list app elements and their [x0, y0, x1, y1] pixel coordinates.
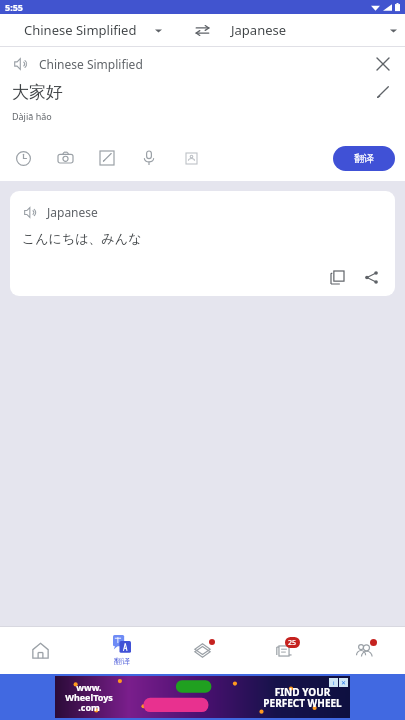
- button[interactable]: Home: [0, 627, 81, 674]
- staticText: i: [333, 679, 335, 687]
- button[interactable]: 翻译: [81, 627, 162, 674]
- staticText: 翻译: [114, 656, 130, 666]
- staticText: Chinese Simplified: [39, 56, 143, 72]
- button[interactable]: Handwriting: [94, 145, 120, 171]
- button[interactable]: Copy: [325, 265, 349, 289]
- button[interactable]: Camera: [52, 145, 78, 171]
- button[interactable]: Share: [359, 265, 383, 289]
- button[interactable]: Feed, 25 new: [243, 627, 324, 674]
- staticText: 25: [288, 638, 297, 648]
- button[interactable]: History: [10, 145, 36, 171]
- button[interactable]: Japanese: [219, 14, 405, 46]
- button[interactable]: Listen translation: [10, 191, 395, 296]
- staticText: ✕: [341, 679, 347, 686]
- staticText: Dàjiā hǎo: [12, 110, 52, 122]
- staticText: 大家好: [12, 82, 63, 103]
- button[interactable]: Community: [324, 627, 405, 674]
- staticText: 5:55: [5, 1, 23, 13]
- button[interactable]: Collections: [162, 627, 243, 674]
- staticText: Japanese: [231, 21, 287, 39]
- button[interactable]: Swap languages: [185, 14, 219, 46]
- staticText: Chinese Simplified: [24, 21, 137, 39]
- button[interactable]: Chinese Simplified: [0, 14, 185, 46]
- button[interactable]: Edit: [371, 80, 395, 104]
- staticText: FIND YOUR PERFECT WHEEL: [263, 685, 342, 710]
- staticText: 翻译: [354, 152, 374, 165]
- button[interactable]: 翻译: [333, 146, 395, 171]
- staticText: www. WheelToys .com: [65, 681, 113, 713]
- button[interactable]: Listen translation: [21, 203, 39, 221]
- staticText: Japanese: [47, 204, 98, 220]
- button[interactable]: Clear: [372, 53, 394, 75]
- button[interactable]: Conversation: [178, 145, 204, 171]
- button[interactable]: Advertisement: [0, 674, 405, 720]
- button[interactable]: Microphone: [136, 145, 162, 171]
- button[interactable]: Listen source: [11, 54, 31, 74]
- staticText: こんにちは、みんな: [22, 230, 142, 246]
